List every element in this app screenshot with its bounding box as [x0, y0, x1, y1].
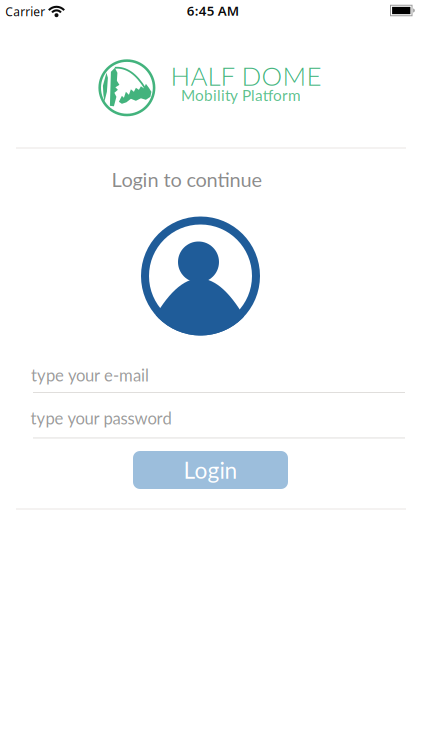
- button[interactable]: type your e-mail: [33, 365, 405, 393]
- staticText: Login to continue: [111, 167, 262, 191]
- staticText: 6:45 AM: [187, 2, 239, 19]
- staticText: Login: [183, 456, 237, 484]
- button[interactable]: Login: [133, 451, 288, 489]
- staticText: type your e-mail: [31, 365, 149, 385]
- staticText: Mobility Platform: [181, 86, 301, 104]
- staticText: HALF DOME: [170, 60, 321, 91]
- staticText: Carrier: [5, 4, 45, 19]
- button[interactable]: type your password: [33, 408, 405, 438]
- staticText: type your password: [30, 408, 171, 428]
